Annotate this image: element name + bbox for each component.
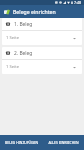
staticText: ALLES EINREICHEN xyxy=(48,140,79,145)
button[interactable]: 1 Seite xyxy=(2,31,82,45)
button[interactable]: 1 Seite xyxy=(2,60,82,74)
staticText: 1 Seite xyxy=(6,64,20,70)
staticText: 7:48 xyxy=(74,0,82,5)
button[interactable]: 2. Beleg xyxy=(2,47,82,59)
button[interactable]: App logo xyxy=(4,9,10,15)
staticText: 1. Beleg xyxy=(14,21,33,28)
button[interactable]: ALLES EINREICHEN xyxy=(42,135,84,150)
staticText: Belege einrichten xyxy=(13,8,56,15)
staticText: 2. Beleg xyxy=(14,50,33,57)
button[interactable]: 1. Beleg xyxy=(2,18,82,30)
staticText: BELEG HINZUFÜGEN xyxy=(5,140,38,145)
staticText: 1 Seite xyxy=(6,35,20,41)
button[interactable]: BELEG HINZUFÜGEN xyxy=(0,135,42,150)
